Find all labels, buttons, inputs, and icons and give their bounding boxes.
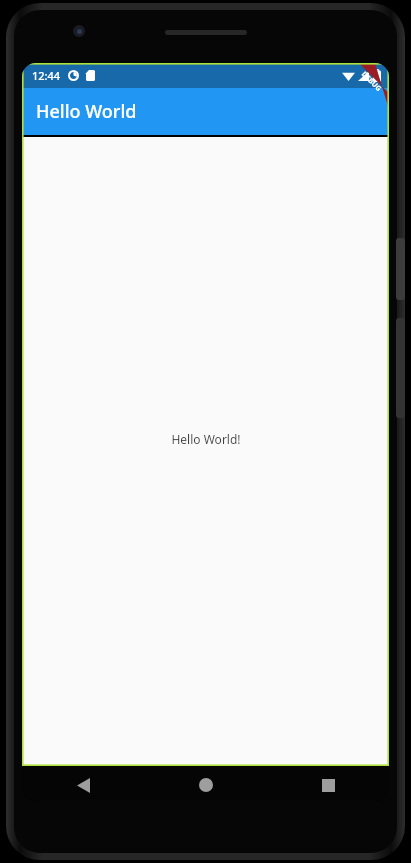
staticText: Hello World! [171,431,241,447]
button[interactable]: Hello World [22,88,389,135]
button[interactable]: Home [145,769,267,801]
staticText: Hello World [36,99,137,124]
staticText: DEBUG [359,70,384,94]
button[interactable]: Recent apps [267,769,389,801]
button[interactable]: Back [22,769,145,801]
staticText: 12:44 [32,68,61,83]
